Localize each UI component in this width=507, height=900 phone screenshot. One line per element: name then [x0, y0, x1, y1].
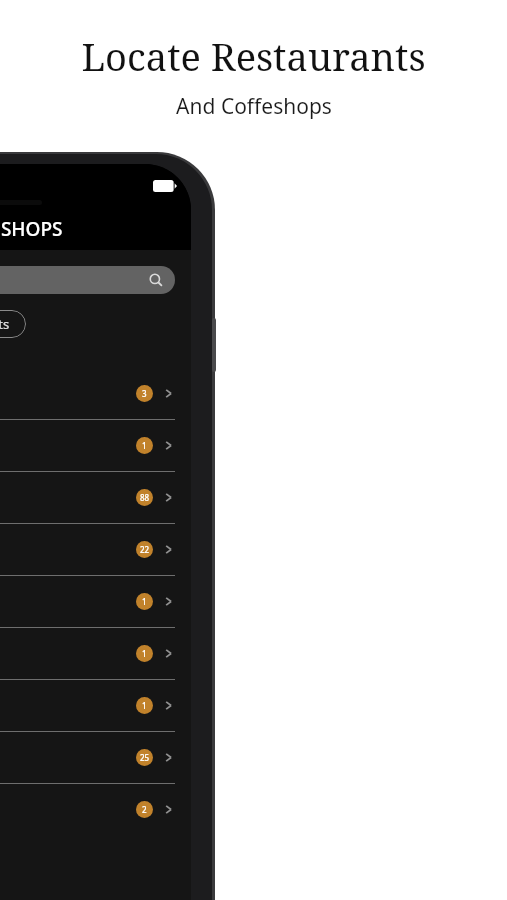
- staticText: 1: [142, 648, 147, 659]
- staticText: RESTAURANTS & COFFEESHOPS: [0, 216, 63, 242]
- staticText: 1: [142, 596, 147, 607]
- button[interactable]: Fig & Fern: [0, 628, 191, 679]
- button[interactable]: Amber Bistro: [0, 368, 191, 419]
- staticText: Locate Restaurants: [81, 30, 426, 82]
- staticText: 1: [142, 440, 147, 451]
- staticText: 88: [140, 492, 150, 503]
- staticText: 3: [142, 388, 147, 399]
- button[interactable]: Events: [0, 310, 26, 338]
- button[interactable]: Golden Spoon: [0, 680, 191, 731]
- other: Search: [149, 273, 163, 287]
- staticText: 25: [140, 752, 150, 763]
- staticText: 22: [140, 544, 150, 555]
- button[interactable]: Dusk Diner: [0, 524, 191, 575]
- staticText: 1: [142, 700, 147, 711]
- staticText: Events: [0, 315, 10, 333]
- button[interactable]: Cafe Noir: [0, 472, 191, 523]
- button[interactable]: Bean & Brew: [0, 420, 191, 471]
- button[interactable]: Ivory Lounge: [0, 784, 191, 835]
- button[interactable]: Ember Grill: [0, 576, 191, 627]
- button[interactable]: Search: [0, 266, 175, 294]
- staticText: 2: [142, 804, 147, 815]
- button[interactable]: Harvest Table: [0, 732, 191, 783]
- staticText: And Coffeshops: [176, 92, 332, 121]
